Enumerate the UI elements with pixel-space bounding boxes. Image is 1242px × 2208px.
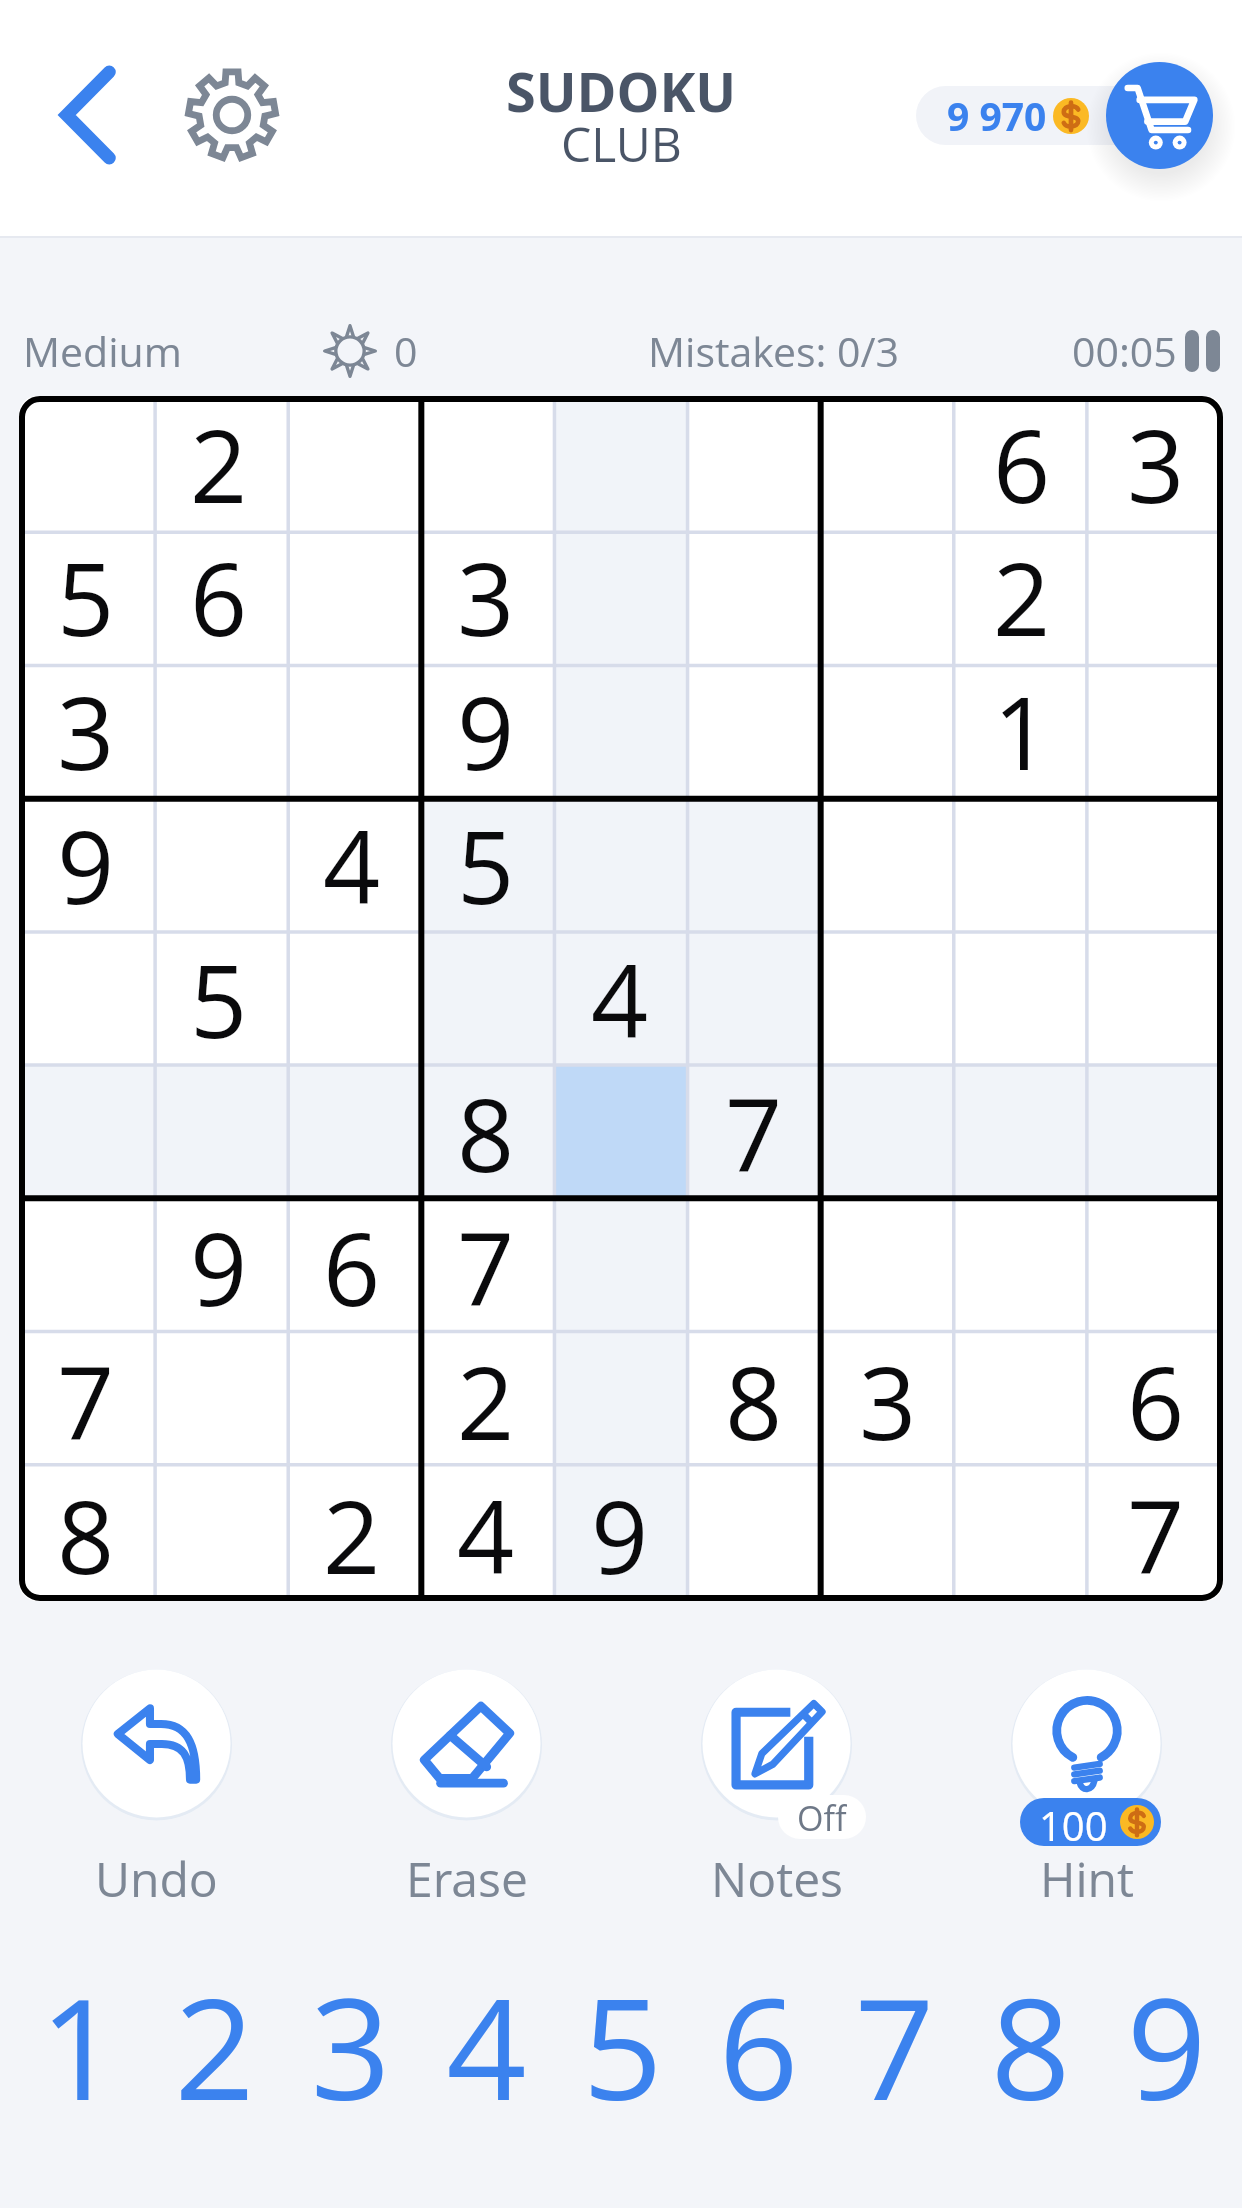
button[interactable] [19, 1199, 152, 1333]
button[interactable] [955, 1199, 1089, 1333]
button[interactable] [687, 663, 821, 797]
button[interactable]: 5 [152, 931, 285, 1065]
button[interactable] [821, 663, 955, 797]
button[interactable] [19, 396, 152, 529]
button[interactable]: 7 [419, 1199, 553, 1333]
button[interactable]: 9 [553, 1467, 687, 1601]
button[interactable] [1089, 931, 1223, 1065]
button[interactable]: Undo [81, 1668, 232, 1898]
button[interactable] [955, 1065, 1089, 1199]
button[interactable] [285, 1333, 419, 1467]
button[interactable]: 6 [152, 529, 285, 663]
button[interactable] [1089, 1199, 1223, 1333]
button[interactable] [285, 663, 419, 797]
button[interactable]: 5 [419, 797, 553, 931]
button[interactable] [1089, 663, 1223, 797]
button[interactable] [687, 797, 821, 931]
button[interactable] [955, 797, 1089, 931]
button[interactable] [687, 529, 821, 663]
button[interactable]: Notes [701, 1668, 852, 1898]
button[interactable] [687, 1467, 821, 1601]
button[interactable] [152, 1065, 285, 1199]
button[interactable]: 7 [826, 1950, 962, 2110]
button[interactable]: Erase [391, 1668, 542, 1898]
button[interactable] [553, 663, 687, 797]
button[interactable]: 6 [1089, 1333, 1223, 1467]
button[interactable] [285, 396, 419, 529]
button[interactable]: 1 [955, 663, 1089, 797]
button[interactable] [821, 529, 955, 663]
button[interactable]: 6 [955, 396, 1089, 529]
button[interactable] [285, 529, 419, 663]
staticText: 1 [993, 663, 1051, 797]
button[interactable]: 2 [285, 1467, 419, 1601]
button[interactable] [821, 1199, 955, 1333]
button[interactable] [419, 396, 553, 529]
button[interactable] [955, 1333, 1089, 1467]
button[interactable]: 3 [1089, 396, 1223, 529]
button[interactable] [152, 663, 285, 797]
button[interactable]: 3 [282, 1950, 418, 2110]
button[interactable] [19, 1065, 152, 1199]
button[interactable] [687, 1199, 821, 1333]
button[interactable]: 9 [19, 797, 152, 931]
button[interactable]: 9 [1098, 1950, 1234, 2110]
button[interactable] [955, 1467, 1089, 1601]
button[interactable]: Settings [172, 55, 292, 175]
button[interactable]: 3 [821, 1333, 955, 1467]
button[interactable] [1089, 529, 1223, 663]
button[interactable] [1089, 797, 1223, 931]
button[interactable]: Shop [1106, 62, 1213, 169]
button[interactable]: 4 [553, 931, 687, 1065]
button[interactable]: 7 [1089, 1467, 1223, 1601]
button[interactable]: 4 [285, 797, 419, 931]
button[interactable]: Hint [1011, 1668, 1162, 1898]
button[interactable]: 4 [418, 1950, 554, 2110]
button[interactable] [553, 1065, 687, 1199]
button[interactable] [821, 396, 955, 529]
button[interactable] [553, 529, 687, 663]
button[interactable]: 8 [687, 1333, 821, 1467]
button[interactable] [152, 1333, 285, 1467]
button[interactable] [821, 931, 955, 1065]
button[interactable]: 9 970 [916, 86, 1166, 145]
button[interactable] [285, 1065, 419, 1199]
button[interactable] [419, 931, 553, 1065]
button[interactable] [553, 1199, 687, 1333]
button[interactable]: 3 [19, 663, 152, 797]
button[interactable]: 8 [962, 1950, 1098, 2110]
button[interactable] [955, 931, 1089, 1065]
button[interactable] [19, 931, 152, 1065]
button[interactable]: Pause [1185, 330, 1220, 372]
button[interactable] [285, 931, 419, 1065]
button[interactable]: 9 [419, 663, 553, 797]
button[interactable] [152, 1467, 285, 1601]
button[interactable] [821, 797, 955, 931]
button[interactable]: 5 [554, 1950, 690, 2110]
button[interactable] [687, 931, 821, 1065]
button[interactable] [152, 797, 285, 931]
button[interactable]: 7 [687, 1065, 821, 1199]
button[interactable]: 8 [19, 1467, 152, 1601]
button[interactable] [553, 797, 687, 931]
button[interactable]: 2 [152, 396, 285, 529]
button[interactable] [687, 396, 821, 529]
button[interactable] [821, 1065, 955, 1199]
button[interactable]: 2 [147, 1950, 282, 2110]
button[interactable] [1089, 1065, 1223, 1199]
button[interactable] [553, 396, 687, 529]
button[interactable]: 6 [690, 1950, 826, 2110]
button[interactable]: 5 [19, 529, 152, 663]
button[interactable]: Back [28, 55, 148, 175]
button[interactable]: 8 [419, 1065, 553, 1199]
button[interactable]: 4 [419, 1467, 553, 1601]
button[interactable] [821, 1467, 955, 1601]
button[interactable]: 3 [419, 529, 553, 663]
button[interactable]: 2 [955, 529, 1089, 663]
button[interactable]: 6 [285, 1199, 419, 1333]
button[interactable]: 2 [419, 1333, 553, 1467]
button[interactable]: 7 [19, 1333, 152, 1467]
button[interactable]: 1 [12, 1950, 147, 2110]
button[interactable]: 9 [152, 1199, 285, 1333]
button[interactable] [553, 1333, 687, 1467]
